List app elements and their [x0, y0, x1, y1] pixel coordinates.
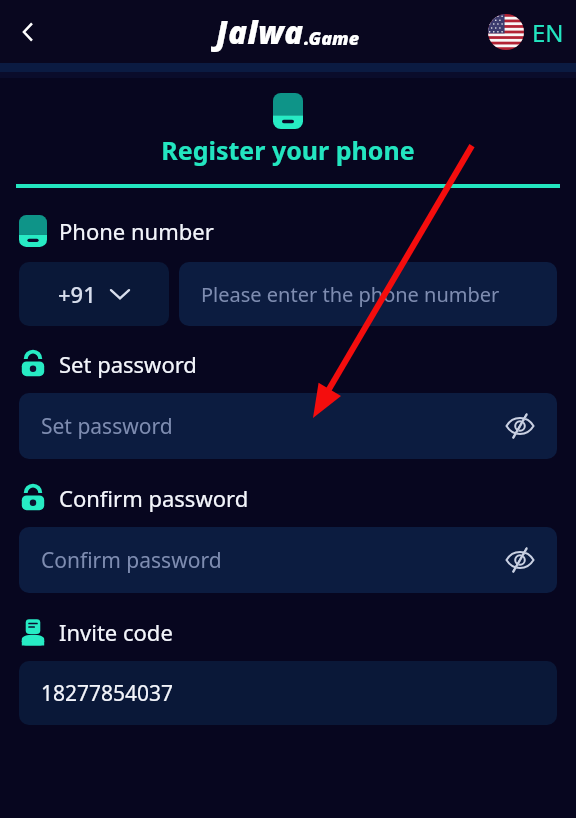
- staticText: EN: [532, 16, 564, 49]
- staticText: Phone number: [59, 216, 214, 246]
- button[interactable]: Please enter the phone number: [179, 262, 557, 326]
- button[interactable]: Back: [6, 10, 50, 54]
- staticText: 18277854037: [41, 679, 174, 708]
- button[interactable]: Show password: [501, 407, 539, 445]
- staticText: Jalwa: [216, 11, 304, 53]
- button[interactable]: Confirm password: [19, 527, 557, 593]
- staticText: Confirm password: [59, 483, 249, 513]
- staticText: Set password: [59, 349, 197, 379]
- staticText: Please enter the phone number: [201, 281, 500, 308]
- staticText: Set password: [41, 412, 173, 441]
- button[interactable]: +91: [19, 262, 169, 326]
- staticText: .Game: [304, 26, 360, 51]
- button[interactable]: Set password: [19, 393, 557, 459]
- staticText: Register your phone: [161, 133, 415, 167]
- button[interactable]: Show password: [501, 541, 539, 579]
- staticText: Invite code: [59, 617, 173, 647]
- button[interactable]: EN: [488, 14, 564, 50]
- staticText: Confirm password: [41, 546, 222, 575]
- staticText: +91: [58, 279, 96, 309]
- button[interactable]: 18277854037: [19, 661, 557, 725]
